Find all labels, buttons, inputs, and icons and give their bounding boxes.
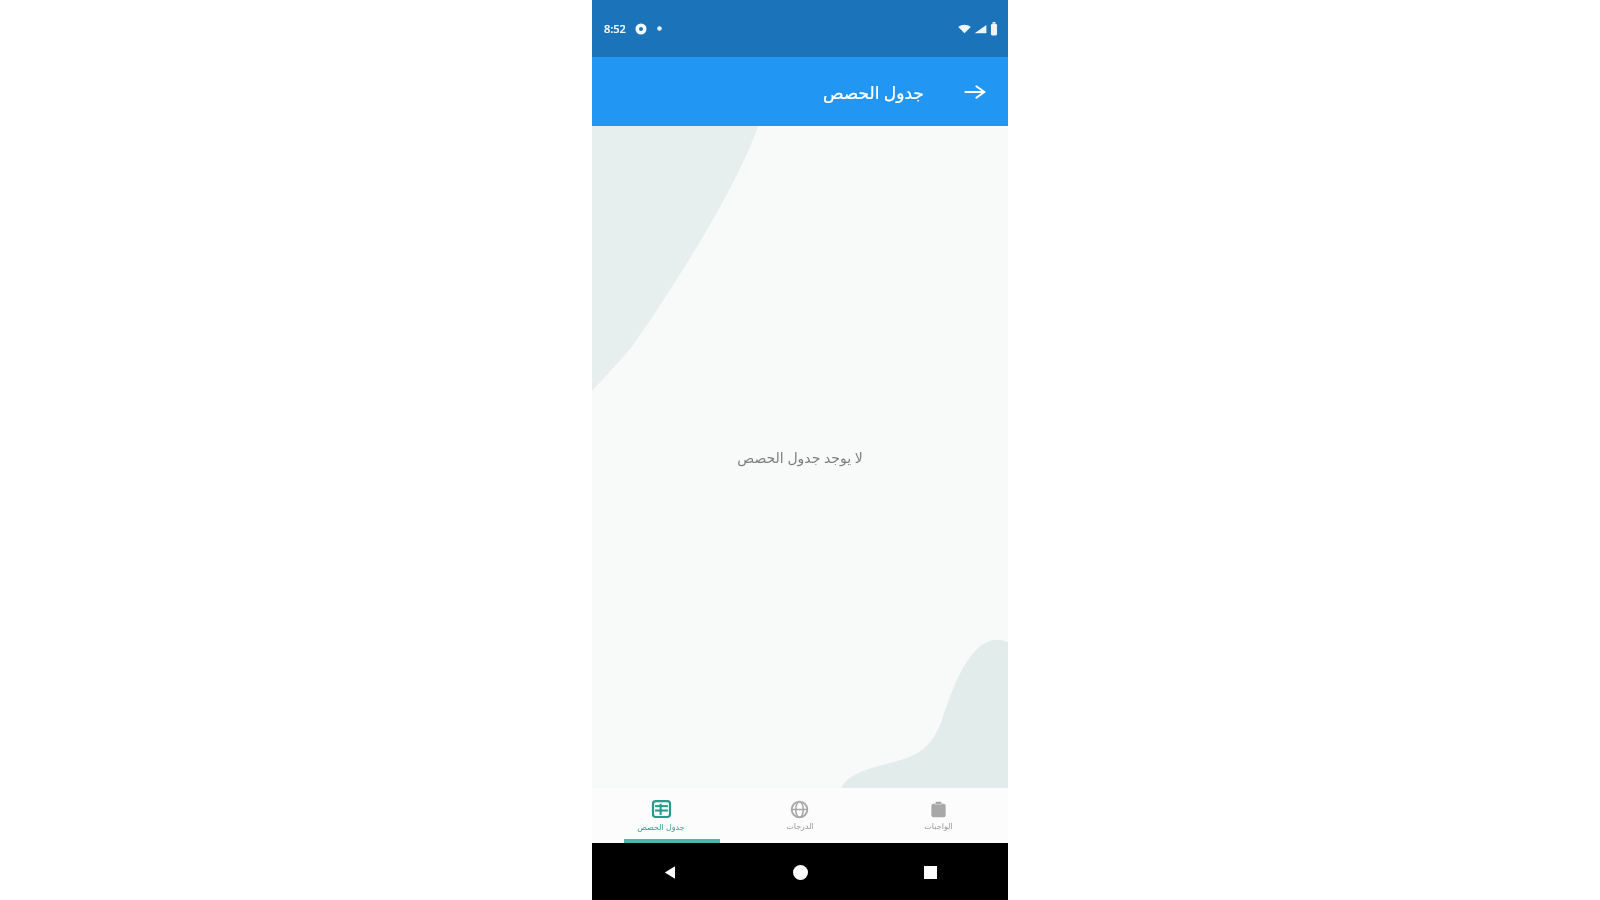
button[interactable]: Back — [954, 71, 996, 113]
button[interactable]: Back — [652, 854, 688, 890]
button[interactable]: جدول الحصص — [592, 788, 730, 843]
staticText: الواجبات — [924, 822, 953, 831]
button[interactable]: الدرجات — [730, 788, 869, 843]
staticText: 8:52 — [604, 21, 626, 36]
staticText: الدرجات — [786, 822, 814, 831]
staticText: جدول الحصص — [823, 81, 924, 104]
button[interactable]: الواجبات — [869, 788, 1008, 843]
button[interactable]: Home — [782, 854, 818, 890]
button[interactable]: Recent apps — [912, 854, 948, 890]
staticText: جدول الحصص — [637, 821, 685, 832]
staticText: لا يوجد جدول الحصص — [737, 448, 863, 467]
